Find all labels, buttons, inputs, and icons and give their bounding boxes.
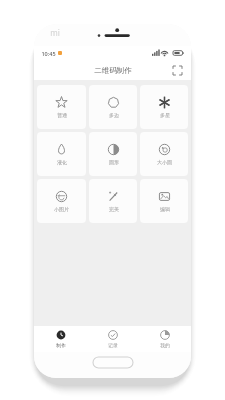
button[interactable]: 液化 (37, 132, 86, 176)
button[interactable]: 圆形 (89, 132, 137, 176)
button[interactable]: 多边 (89, 85, 137, 129)
staticText: 二维码制作 (94, 66, 132, 75)
staticText: 液化 (57, 159, 67, 165)
button[interactable]: 我的 (139, 326, 191, 352)
staticText: 完美 (109, 206, 119, 212)
staticText: 小图片 (54, 206, 69, 212)
staticText: 制作 (56, 342, 66, 348)
staticText: 记录 (108, 342, 118, 348)
button[interactable]: 大小圆 (140, 132, 188, 176)
button[interactable]: 小图片 (37, 179, 86, 223)
button[interactable]: 制作 (34, 326, 87, 352)
button[interactable]: Scan QR code (169, 62, 185, 78)
staticText: 10:45 (41, 50, 56, 57)
staticText: 我的 (160, 342, 170, 348)
button[interactable]: 普通 (37, 85, 86, 129)
staticText: 编辑 (160, 206, 170, 212)
button[interactable]: 完美 (89, 179, 137, 223)
staticText: 多边 (109, 112, 119, 118)
button[interactable]: 记录 (87, 326, 139, 352)
staticText: 圆形 (109, 159, 119, 165)
staticText: 普通 (57, 112, 67, 118)
staticText: mi (50, 27, 60, 38)
staticText: 大小圆 (157, 159, 172, 165)
staticText: 多星 (160, 112, 170, 118)
button[interactable]: 多星 (140, 85, 188, 129)
button[interactable]: 编辑 (140, 179, 188, 223)
